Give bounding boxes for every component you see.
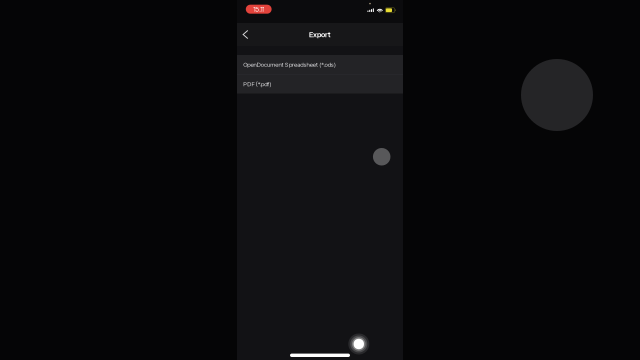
button[interactable]: Back xyxy=(237,23,253,46)
button[interactable]: PDF (*.pdf) xyxy=(237,74,403,93)
staticText: PDF (*.pdf) xyxy=(243,80,271,88)
staticText: Export xyxy=(309,30,331,39)
staticText: 15.11 xyxy=(253,5,264,13)
button[interactable]: OpenDocument Spreadsheet (*.ods) xyxy=(237,55,403,74)
staticText: OpenDocument Spreadsheet (*.ods) xyxy=(243,61,336,68)
